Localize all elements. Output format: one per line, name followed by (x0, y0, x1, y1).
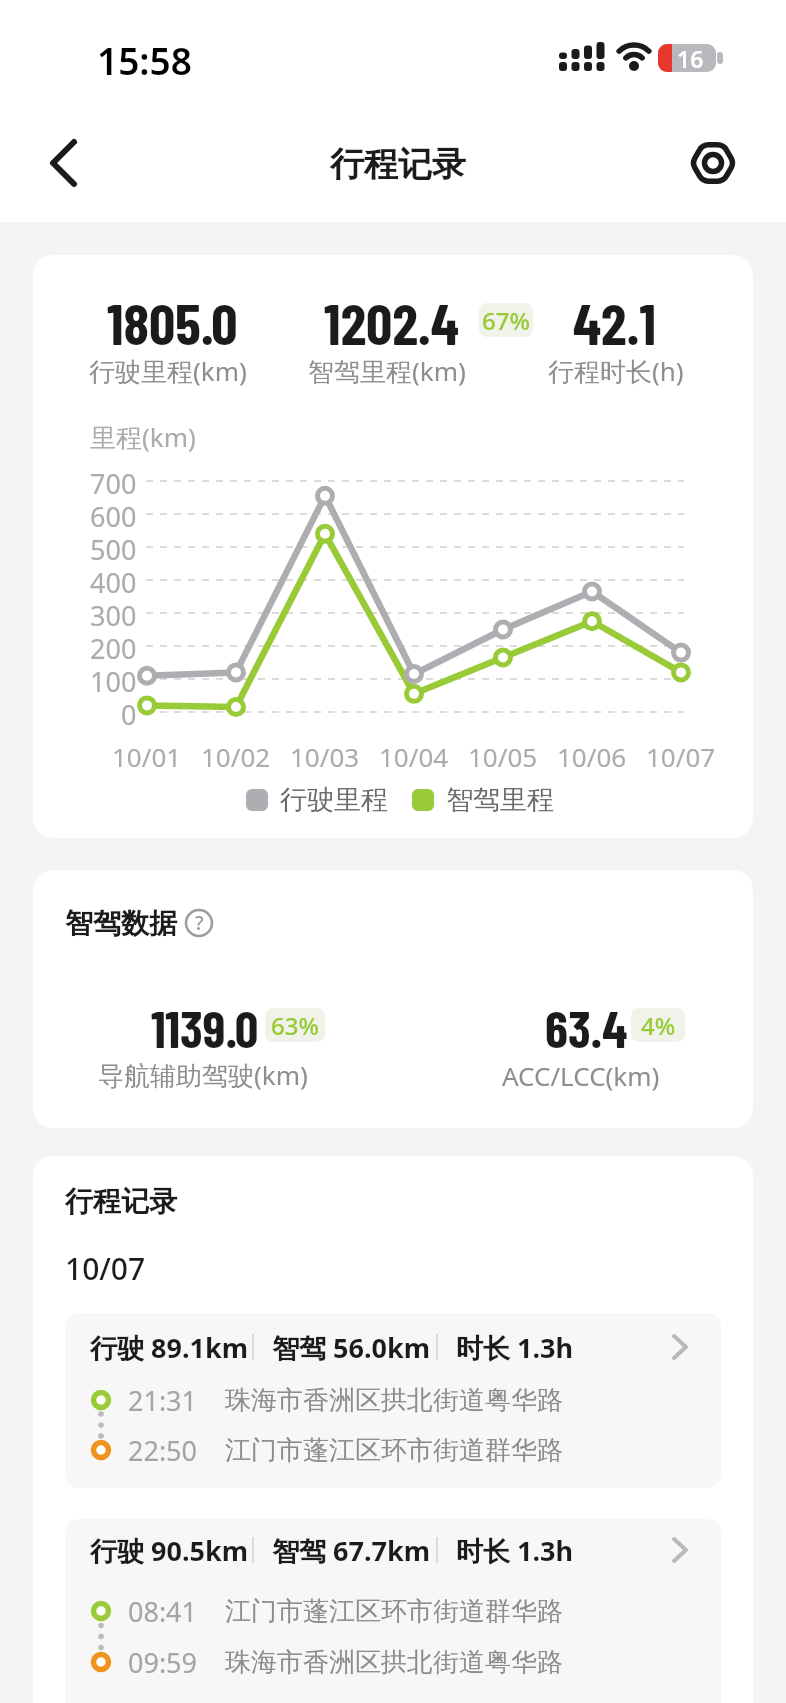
staticText: 珠海市香洲区拱北街道粤华路 (225, 1646, 563, 1679)
staticText: 21:31 (128, 1382, 198, 1418)
staticText: 4% (641, 1009, 676, 1042)
staticText: 08:41 (128, 1593, 198, 1629)
staticText: 10/02 (201, 739, 271, 771)
staticText: 时长 1.3h (456, 1532, 574, 1569)
staticText: 200 (90, 630, 137, 662)
staticText: 400 (90, 564, 137, 596)
button[interactable] (65, 1519, 721, 1703)
staticText: 行程记录 (330, 143, 466, 186)
button[interactable] (688, 138, 738, 188)
button[interactable] (38, 138, 88, 188)
staticText: 10/06 (557, 739, 627, 771)
staticText: 行驶里程 (280, 783, 388, 817)
staticText: 智驾 67.7km (272, 1532, 431, 1569)
staticText: 智驾数据 (65, 906, 177, 941)
staticText: 10/04 (379, 739, 449, 771)
staticText: 行程时长(h) (548, 353, 684, 389)
staticText: 67% (482, 304, 530, 337)
staticText: 时长 1.3h (456, 1329, 574, 1366)
staticText: 1202.4 (324, 287, 459, 349)
staticText: 10/07 (646, 739, 716, 771)
staticText: 智驾 56.0km (272, 1329, 431, 1366)
button[interactable] (184, 909, 214, 939)
staticText: 300 (90, 597, 137, 629)
staticText: 10/03 (290, 739, 360, 771)
staticText: 63.4 (545, 996, 628, 1056)
staticText: 10/07 (65, 1248, 146, 1289)
staticText: 42.1 (573, 287, 656, 349)
staticText: 1139.0 (151, 996, 259, 1056)
staticText: 里程(km) (90, 419, 196, 453)
staticText: 导航辅助驾驶(km) (98, 1057, 308, 1093)
staticText: 700 (90, 465, 137, 497)
staticText: 智驾里程 (446, 783, 554, 817)
staticText: 500 (90, 531, 137, 563)
staticText: 16 (677, 43, 704, 73)
staticText: 江门市蓬江区环市街道群华路 (225, 1595, 563, 1628)
staticText: 10/05 (468, 739, 538, 771)
staticText: 1805.0 (107, 287, 238, 349)
staticText: 智驾里程(km) (308, 353, 466, 389)
staticText: ? (195, 910, 204, 936)
staticText: 行驶 89.1km (90, 1329, 249, 1366)
button[interactable] (65, 1313, 721, 1488)
staticText: 22:50 (128, 1432, 198, 1468)
staticText: 100 (90, 663, 137, 695)
staticText: 10/01 (112, 739, 182, 771)
staticText: ACC/LCC(km) (502, 1058, 660, 1093)
staticText: 珠海市香洲区拱北街道粤华路 (225, 1384, 563, 1417)
staticText: 行程记录 (65, 1184, 177, 1219)
staticText: 600 (90, 498, 137, 530)
staticText: 63% (271, 1009, 319, 1042)
staticText: 江门市蓬江区环市街道群华路 (225, 1434, 563, 1467)
staticText: 15:58 (97, 35, 192, 79)
staticText: 09:59 (128, 1644, 198, 1680)
staticText: 0 (121, 696, 137, 728)
staticText: 行驶 90.5km (90, 1532, 249, 1569)
staticText: 行驶里程(km) (89, 353, 247, 389)
